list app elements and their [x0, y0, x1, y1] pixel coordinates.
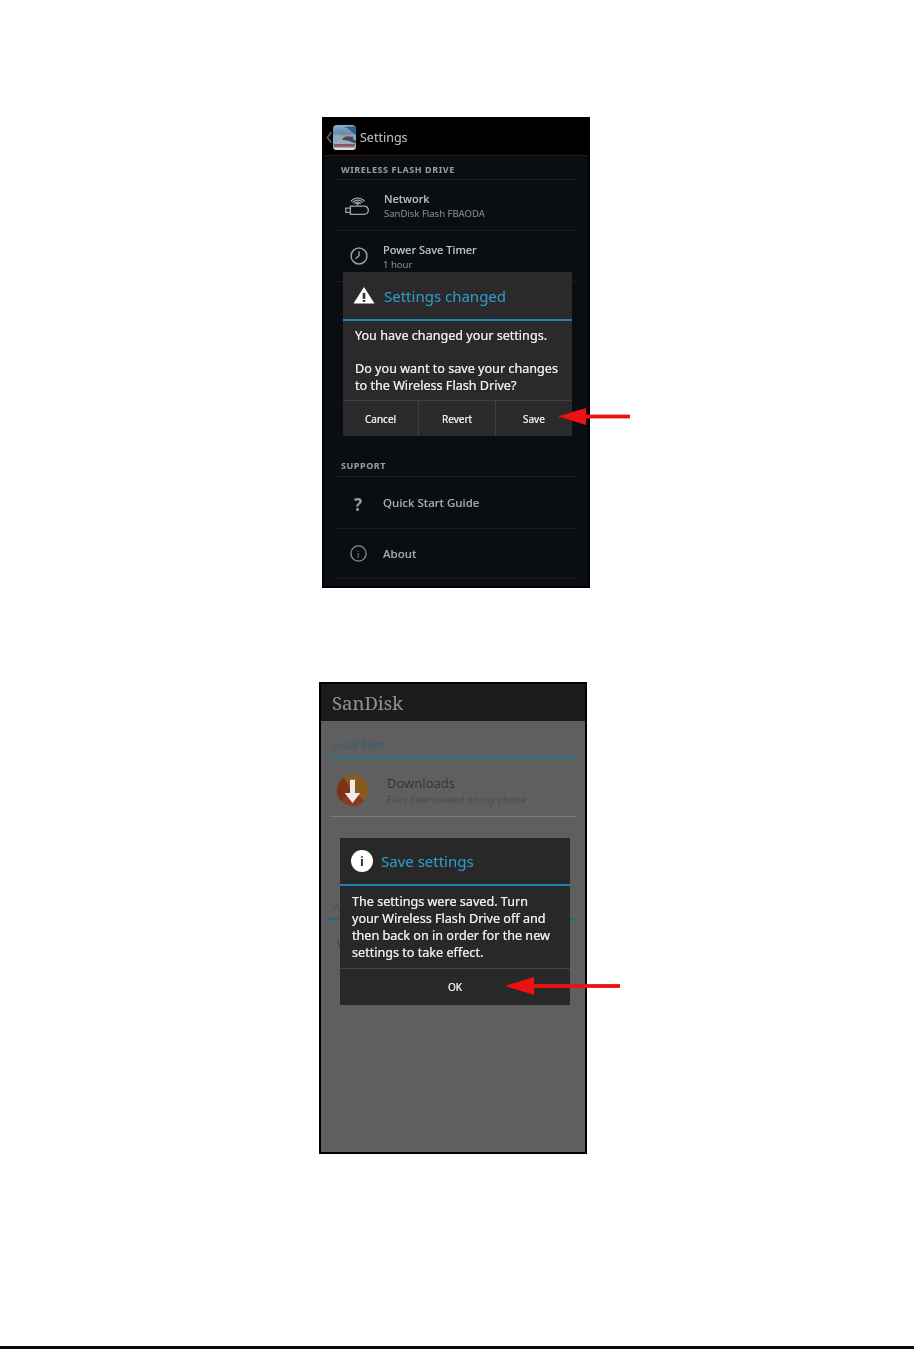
- staticText: ?: [354, 493, 363, 513]
- button[interactable]: ?: [324, 478, 588, 528]
- staticText: Settings: [360, 129, 408, 146]
- staticText: i: [357, 548, 360, 560]
- staticText: Wireless Flash Drive not connected: [337, 936, 501, 950]
- staticText: Local Files: [332, 737, 385, 752]
- staticText: Save settings: [381, 851, 474, 871]
- staticText: 1 hour: [383, 258, 413, 271]
- staticText: Files downloaded on my phone: [387, 793, 526, 806]
- staticText: SanDisk: [332, 690, 403, 715]
- staticText: i: [360, 852, 364, 870]
- other: Back: [326, 131, 332, 144]
- staticText: SUPPORT: [341, 459, 387, 471]
- staticText: Downloads: [387, 774, 456, 792]
- staticText: WIRELESS FLASH DRIVE: [341, 163, 455, 175]
- staticText: Cancel: [365, 412, 397, 426]
- button[interactable]: OK: [340, 969, 570, 1005]
- staticText: You have changed your settings.: [355, 327, 548, 344]
- staticText: Wireless Flash Drive: [332, 899, 435, 914]
- staticText: Settings changed: [384, 286, 507, 306]
- staticText: SanDisk Flash FBAODA: [384, 207, 485, 220]
- staticText: Quick Start Guide: [383, 495, 480, 511]
- staticText: Revert: [442, 412, 473, 426]
- button[interactable]: Power Save Timer: [324, 231, 588, 281]
- staticText: About: [383, 546, 417, 562]
- button[interactable]: Network: [324, 180, 588, 230]
- button[interactable]: Save: [496, 401, 572, 436]
- button[interactable]: Cancel: [343, 401, 418, 436]
- staticText: Save: [523, 412, 545, 426]
- staticText: OK: [448, 980, 462, 994]
- staticText: The settings were saved. Turn your Wirel…: [352, 893, 550, 961]
- staticText: Do you want to save your changes to the …: [355, 360, 564, 393]
- button[interactable]: SanDisk: [321, 684, 585, 721]
- button[interactable]: Downloads: [321, 765, 585, 815]
- button[interactable]: Revert: [419, 401, 495, 436]
- button[interactable]: i: [324, 529, 588, 578]
- staticText: Network: [384, 191, 430, 206]
- button[interactable]: Back: [324, 119, 588, 155]
- staticText: Power Save Timer: [383, 242, 477, 257]
